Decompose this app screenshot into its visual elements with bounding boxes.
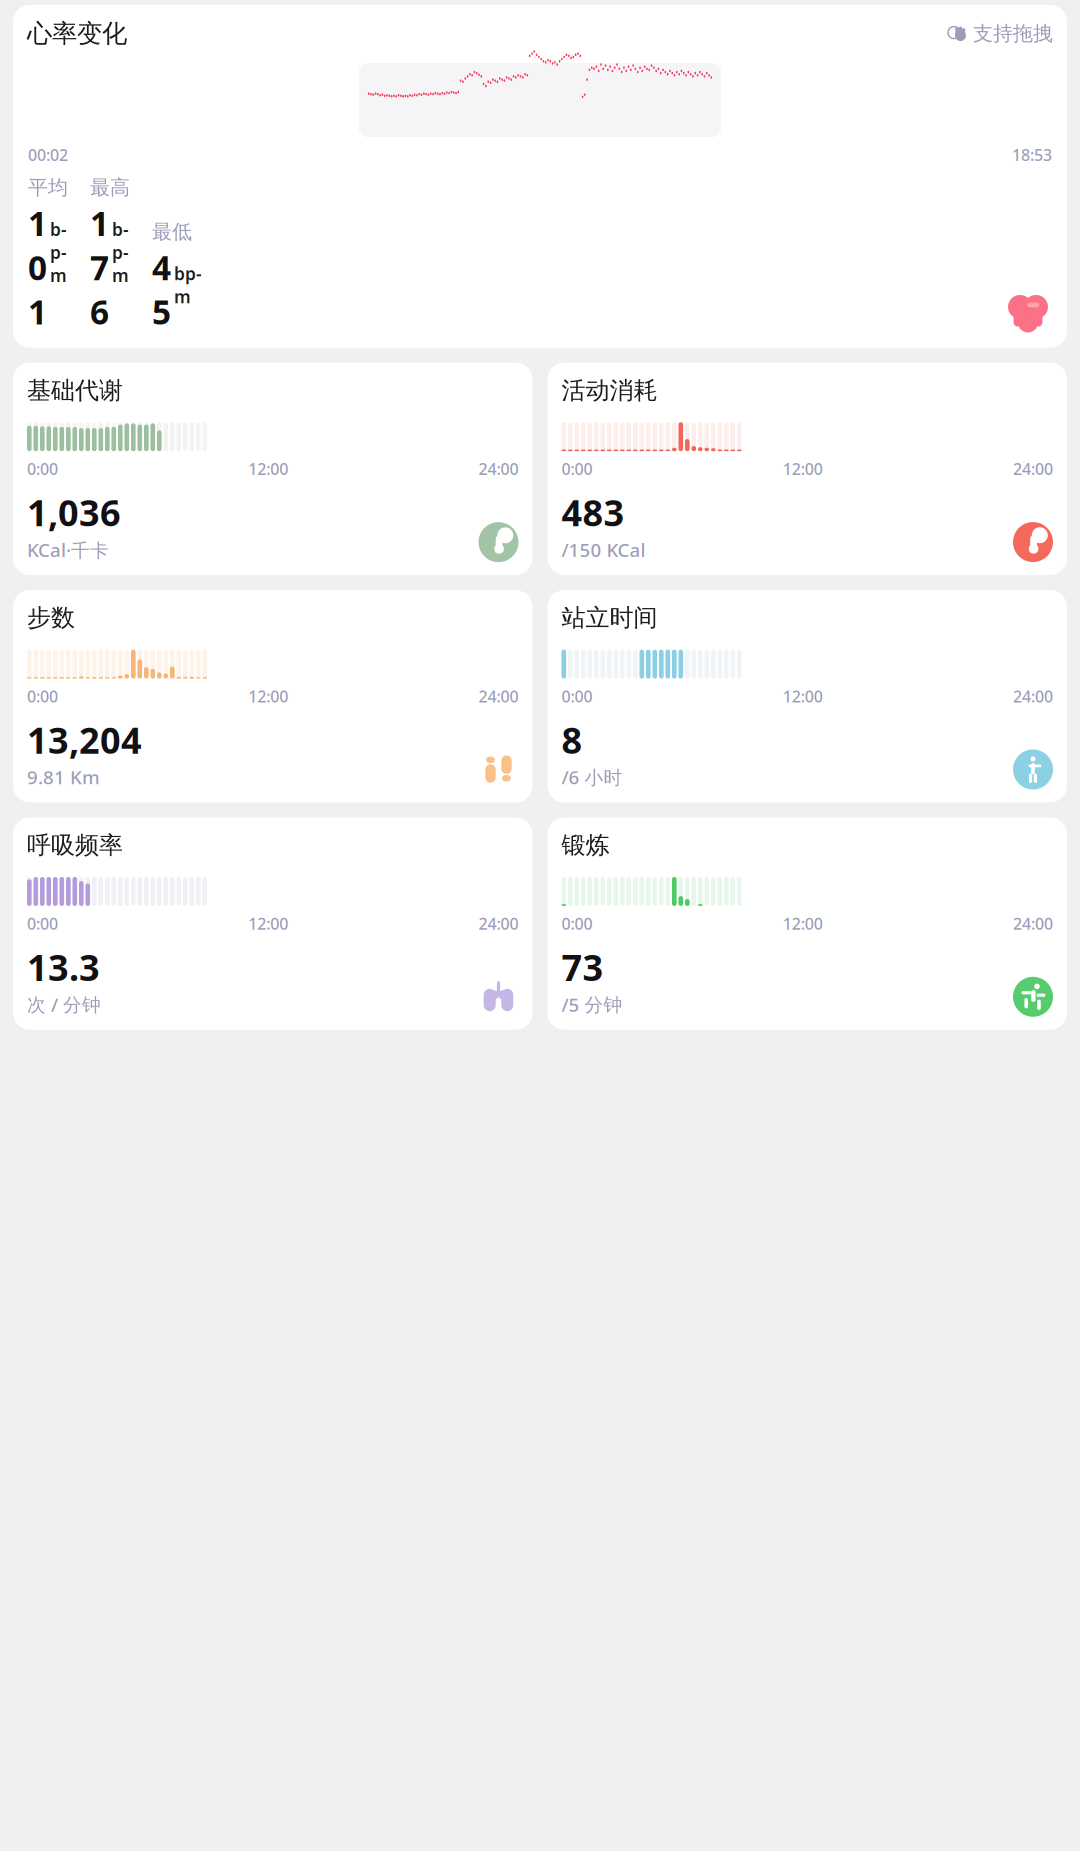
- staticText: 最低: [152, 220, 192, 244]
- staticText: 24:00: [1013, 686, 1053, 707]
- staticText: bpm: [174, 262, 202, 308]
- staticText: 0:00: [27, 913, 58, 934]
- staticText: 12:00: [783, 458, 823, 479]
- staticText: 0:00: [561, 913, 592, 934]
- staticText: 0:00: [27, 458, 58, 479]
- button[interactable]: 锻炼: [547, 817, 1067, 1030]
- staticText: 73: [561, 943, 603, 991]
- staticText: 12:00: [248, 458, 288, 479]
- staticText: 0:00: [561, 686, 592, 707]
- staticText: 45: [152, 245, 171, 334]
- staticText: /6 小时: [561, 765, 622, 789]
- button[interactable]: 支持拖拽: [949, 21, 1053, 46]
- staticText: bpm: [50, 218, 67, 287]
- staticText: 锻炼: [561, 830, 609, 860]
- staticText: 12:00: [248, 913, 288, 934]
- staticText: 24:00: [478, 458, 518, 479]
- staticText: /5 分钟: [561, 992, 622, 1017]
- button[interactable]: 呼吸频率: [13, 817, 532, 1030]
- staticText: 13.3: [27, 943, 100, 991]
- staticText: bpm: [112, 218, 129, 287]
- staticText: 步数: [27, 603, 75, 633]
- staticText: 0:00: [561, 458, 592, 479]
- staticText: 24:00: [1013, 458, 1053, 479]
- staticText: 24:00: [1013, 913, 1053, 934]
- staticText: 24:00: [478, 913, 518, 934]
- button[interactable]: 活动消耗: [547, 363, 1067, 575]
- staticText: 483: [561, 488, 624, 536]
- staticText: 心率变化: [27, 18, 127, 49]
- staticText: 00:02: [28, 144, 68, 165]
- staticText: 12:00: [783, 913, 823, 934]
- button[interactable]: 步数: [13, 590, 532, 802]
- button[interactable]: 基础代谢: [13, 363, 532, 575]
- staticText: 1,036: [27, 488, 121, 536]
- staticText: 0:00: [27, 686, 58, 707]
- staticText: 24:00: [478, 686, 518, 707]
- staticText: 12:00: [783, 686, 823, 707]
- staticText: 呼吸频率: [27, 830, 123, 860]
- staticText: 18:53: [1012, 144, 1052, 165]
- staticText: /150 KCal: [561, 537, 645, 562]
- staticText: 次 / 分钟: [27, 992, 101, 1017]
- staticText: 9.81 Km: [27, 765, 100, 789]
- staticText: 101: [28, 201, 47, 334]
- staticText: 13,204: [27, 716, 142, 764]
- button[interactable]: 心率变化: [13, 5, 1067, 348]
- staticText: 8: [561, 716, 582, 764]
- staticText: 平均: [28, 175, 68, 200]
- staticText: 活动消耗: [561, 376, 657, 405]
- button[interactable]: 站立时间: [547, 590, 1067, 802]
- staticText: 最高: [90, 175, 130, 200]
- staticText: 站立时间: [561, 603, 657, 633]
- staticText: 12:00: [248, 686, 288, 707]
- staticText: 176: [90, 201, 109, 334]
- staticText: 基础代谢: [27, 376, 123, 405]
- staticText: 支持拖拽: [973, 21, 1053, 46]
- staticText: KCal·千卡: [27, 537, 109, 562]
